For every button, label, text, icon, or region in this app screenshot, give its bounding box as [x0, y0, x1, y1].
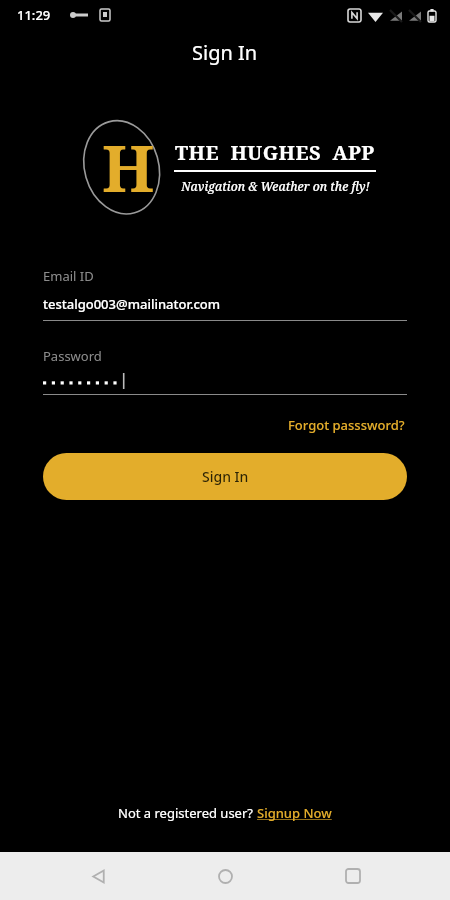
- staticText: Email ID: [43, 267, 94, 285]
- staticText: H: [102, 124, 155, 211]
- button[interactable]: Signup Now: [257, 804, 332, 822]
- button[interactable]: Recent apps: [323, 852, 383, 900]
- button[interactable]: Forgot passsword?: [286, 414, 407, 436]
- staticText: Sign In: [192, 39, 258, 66]
- staticText: Forgot passsword?: [288, 416, 405, 434]
- staticText: Password: [43, 347, 102, 365]
- staticText: testalgo003@mailinator.com: [43, 295, 221, 313]
- staticText: Navigation & Weather on the fly!: [181, 178, 370, 194]
- button[interactable]: Back: [68, 852, 128, 900]
- staticText: THE HUGHES APP: [175, 139, 375, 166]
- staticText: Not a registered user?: [118, 804, 257, 822]
- button[interactable]: Home: [195, 852, 255, 900]
- staticText: Sign In: [202, 467, 249, 486]
- staticText: Signup Now: [257, 804, 332, 822]
- staticText: 11:29: [17, 6, 51, 24]
- button[interactable]: Sign In: [43, 453, 407, 500]
